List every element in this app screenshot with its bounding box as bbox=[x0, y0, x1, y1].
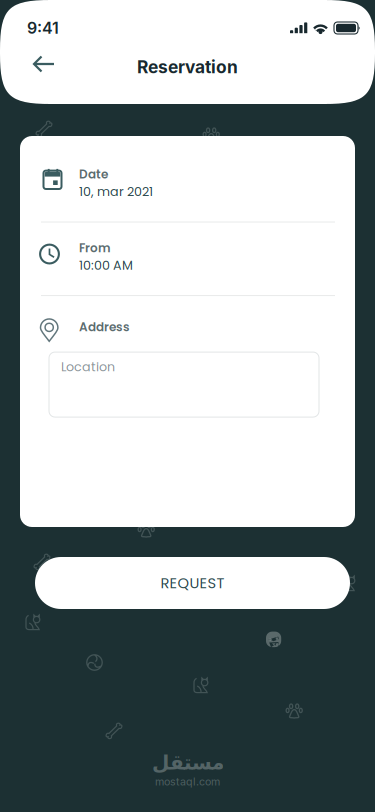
staticText: Location bbox=[61, 358, 115, 376]
staticText: 10, mar 2021 bbox=[79, 183, 153, 200]
staticText: 10:00 AM bbox=[79, 256, 133, 274]
staticText: مستقل bbox=[151, 751, 223, 774]
staticText: Reservation bbox=[137, 56, 238, 77]
button[interactable]: REQUEST bbox=[35, 557, 350, 609]
staticText: Date bbox=[79, 166, 108, 183]
staticText: 9:41 bbox=[27, 18, 59, 38]
staticText: Address bbox=[79, 319, 130, 335]
staticText: From bbox=[79, 239, 111, 256]
staticText: REQUEST bbox=[160, 573, 224, 593]
button[interactable]: Back bbox=[21, 46, 67, 88]
staticText: mostaql.com bbox=[155, 775, 220, 788]
